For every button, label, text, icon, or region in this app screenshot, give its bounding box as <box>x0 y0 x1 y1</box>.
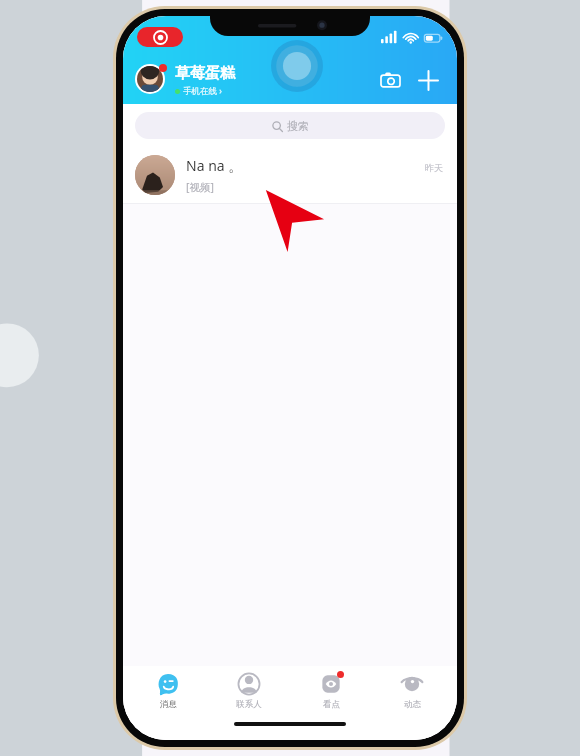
staticText: Na na 。 <box>186 156 243 175</box>
staticText: 昨天 <box>425 162 443 173</box>
staticText: 手机在线 › <box>183 85 222 97</box>
button[interactable]: 动态 <box>376 666 448 718</box>
button[interactable]: 看点 <box>295 666 367 718</box>
staticText: 看点 <box>323 699 340 710</box>
button[interactable]: 搜索 <box>135 112 445 139</box>
staticText: 消息 <box>160 699 177 710</box>
button[interactable]: Recording <box>137 27 183 47</box>
button[interactable]: 消息 <box>132 666 204 718</box>
staticText: 联系人 <box>236 699 262 710</box>
staticText: [视频] <box>186 180 214 194</box>
button[interactable]: 联系人 <box>213 666 285 718</box>
button[interactable]: Profile <box>135 64 167 96</box>
button[interactable]: Na na 。 <box>123 147 457 203</box>
staticText: 搜索 <box>287 119 309 133</box>
staticText: 动态 <box>404 699 421 710</box>
staticText: 草莓蛋糕 <box>175 64 235 83</box>
button[interactable]: Add <box>413 65 443 95</box>
button[interactable]: Camera <box>375 65 405 95</box>
